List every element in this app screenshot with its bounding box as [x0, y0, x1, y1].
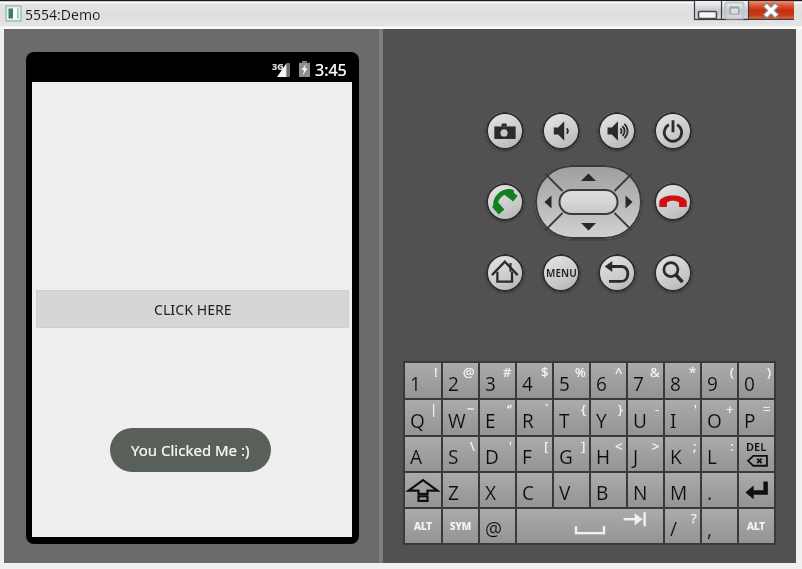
- staticText: *: [689, 363, 697, 381]
- staticText: ^: [615, 363, 623, 381]
- button[interactable]: ALT: [405, 509, 441, 543]
- button[interactable]: M: [665, 473, 700, 507]
- button[interactable]: R: [517, 400, 552, 435]
- button[interactable]: V: [554, 473, 589, 507]
- staticText: 5: [559, 371, 570, 397]
- staticText: >: [652, 437, 660, 455]
- button[interactable]: Delete: [739, 437, 774, 471]
- button[interactable]: Q: [405, 400, 441, 435]
- staticText: G: [559, 444, 573, 470]
- staticText: %: [575, 363, 586, 381]
- button[interactable]: Power: [652, 110, 694, 152]
- button[interactable]: X: [480, 473, 515, 507]
- button[interactable]: A: [405, 437, 441, 471]
- button[interactable]: 2: [443, 363, 478, 398]
- staticText: MENU: [546, 266, 577, 280]
- button[interactable]: Volume down: [540, 110, 582, 152]
- button[interactable]: SYM: [443, 509, 478, 543]
- button[interactable]: Search: [652, 252, 694, 294]
- button[interactable]: P: [739, 400, 774, 435]
- button[interactable]: End call: [652, 181, 694, 223]
- button[interactable]: U: [628, 400, 663, 435]
- staticText: F: [522, 444, 532, 470]
- button[interactable]: 8: [665, 363, 700, 398]
- button[interactable]: /: [665, 509, 700, 543]
- button[interactable]: Home: [484, 252, 526, 294]
- button[interactable]: .: [702, 473, 737, 507]
- button[interactable]: Volume up: [596, 110, 638, 152]
- staticText: I: [670, 408, 677, 434]
- button[interactable]: 3: [480, 363, 515, 398]
- button[interactable]: H: [591, 437, 626, 471]
- staticText: 3G: [272, 60, 284, 72]
- staticText: :: [730, 437, 734, 455]
- button[interactable]: 9: [702, 363, 737, 398]
- staticText: 2: [448, 371, 459, 397]
- button[interactable]: ,: [702, 509, 737, 543]
- button[interactable]: T: [554, 400, 589, 435]
- button[interactable]: Enter: [739, 473, 774, 507]
- button[interactable]: Close: [748, 1, 794, 20]
- staticText: P: [744, 408, 756, 434]
- button[interactable]: C: [517, 473, 552, 507]
- button[interactable]: Y: [591, 400, 626, 435]
- button[interactable]: Camera: [484, 110, 526, 152]
- button[interactable]: MENU: [540, 252, 582, 294]
- staticText: S: [448, 444, 459, 470]
- button[interactable]: S: [443, 437, 478, 471]
- button[interactable]: 4: [517, 363, 552, 398]
- staticText: M: [670, 480, 688, 506]
- staticText: ,: [707, 516, 713, 542]
- staticText: `: [545, 400, 549, 418]
- button[interactable]: 7: [628, 363, 663, 398]
- staticText: 6: [596, 371, 607, 397]
- button[interactable]: Shift: [405, 473, 441, 507]
- button[interactable]: Space: [517, 509, 663, 543]
- button[interactable]: 6: [591, 363, 626, 398]
- staticText: =: [763, 400, 771, 418]
- staticText: [: [544, 437, 549, 455]
- button[interactable]: J: [628, 437, 663, 471]
- button[interactable]: @: [480, 509, 515, 543]
- button[interactable]: B: [591, 473, 626, 507]
- button[interactable]: Directional pad: [533, 163, 644, 241]
- staticText: SYM: [450, 519, 472, 533]
- staticText: 7: [633, 371, 644, 397]
- button[interactable]: ALT: [739, 509, 774, 543]
- button[interactable]: K: [665, 437, 700, 471]
- button[interactable]: W: [443, 400, 478, 435]
- button[interactable]: 0: [739, 363, 774, 398]
- button[interactable]: O: [702, 400, 737, 435]
- button[interactable]: CLICK HERE: [36, 290, 349, 328]
- staticText: .: [707, 480, 713, 506]
- staticText: ): [767, 363, 771, 381]
- button[interactable]: I: [665, 400, 700, 435]
- staticText: 8: [670, 371, 681, 397]
- button[interactable]: E: [480, 400, 515, 435]
- button[interactable]: 5: [554, 363, 589, 398]
- staticText: -: [655, 400, 660, 418]
- button[interactable]: Call: [484, 181, 526, 223]
- staticText: W: [448, 408, 466, 434]
- staticText: ?: [691, 509, 697, 527]
- staticText: \: [470, 437, 475, 455]
- staticText: ALT: [414, 519, 433, 533]
- staticText: Z: [448, 480, 459, 506]
- staticText: <: [615, 437, 623, 455]
- staticText: 1: [410, 371, 421, 397]
- button[interactable]: G: [554, 437, 589, 471]
- staticText: H: [596, 444, 611, 470]
- staticText: C: [522, 480, 535, 506]
- staticText: ': [694, 400, 697, 418]
- staticText: 5554:Demo: [25, 5, 101, 24]
- button[interactable]: Minimize: [694, 1, 721, 20]
- button[interactable]: F: [517, 437, 552, 471]
- button[interactable]: Back: [596, 252, 638, 294]
- button[interactable]: L: [702, 437, 737, 471]
- button[interactable]: Maximize: [721, 1, 748, 20]
- button[interactable]: D: [480, 437, 515, 471]
- button[interactable]: Z: [443, 473, 478, 507]
- staticText: U: [633, 408, 647, 434]
- button[interactable]: N: [628, 473, 663, 507]
- button[interactable]: 1: [405, 363, 441, 398]
